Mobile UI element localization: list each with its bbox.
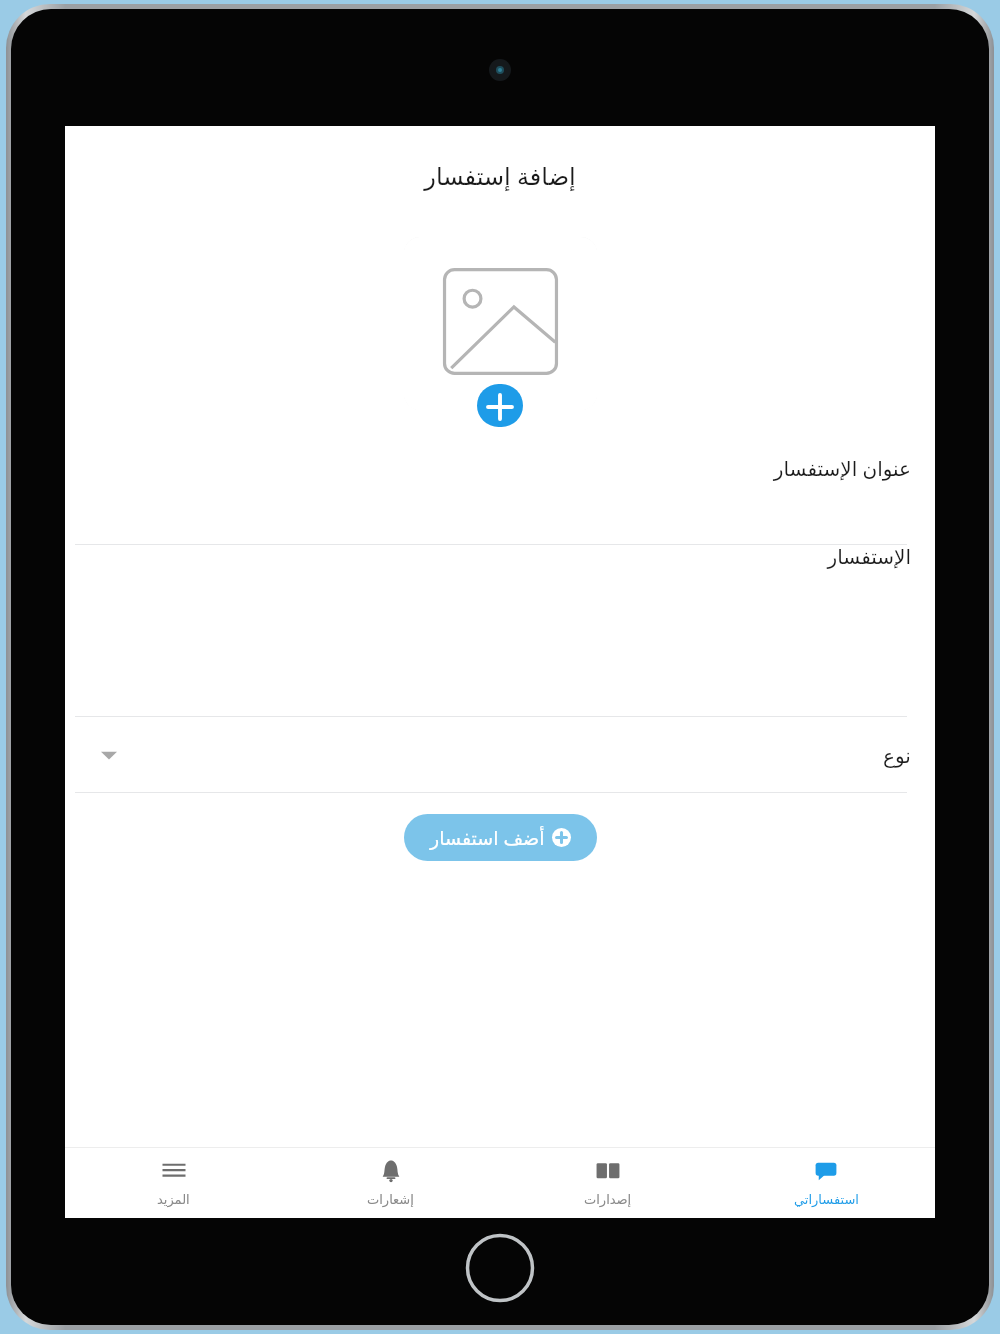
staticText: عنوان الإستفسار (65, 455, 911, 482)
staticText: نوع (883, 744, 911, 767)
button[interactable]: إصدارات (499, 1148, 717, 1218)
staticText: إشعارات (367, 1192, 414, 1207)
button[interactable]: Add photo (477, 384, 523, 427)
staticText: استفساراتي (794, 1192, 859, 1207)
button[interactable]: Home (465, 1233, 535, 1303)
button[interactable]: أضف استفسار (404, 814, 597, 861)
button[interactable]: عنوان الإستفسار (65, 455, 935, 545)
button[interactable]: Add image (404, 237, 597, 410)
button[interactable]: إشعارات (282, 1148, 499, 1218)
staticText: إصدارات (584, 1192, 632, 1207)
staticText: المزيد (157, 1192, 190, 1207)
staticText: أضف استفسار (430, 825, 545, 851)
staticText: إضافة إستفسار (65, 159, 935, 192)
staticText: الإستفسار (65, 545, 911, 568)
button[interactable]: نوع (65, 717, 935, 793)
button[interactable]: المزيد (65, 1148, 282, 1218)
button[interactable]: استفساراتي (717, 1148, 935, 1218)
button[interactable]: الإستفسار (65, 545, 935, 717)
